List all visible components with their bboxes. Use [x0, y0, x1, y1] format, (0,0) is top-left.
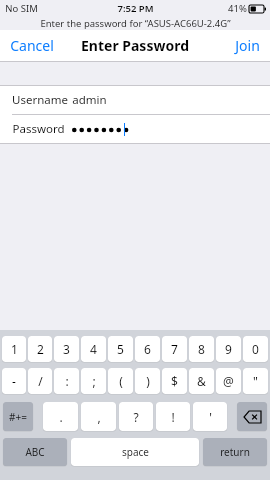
staticText: ' [209, 409, 212, 425]
staticText: #+= [9, 410, 27, 424]
button[interactable]: ABC [3, 438, 67, 466]
staticText: ) [146, 373, 150, 389]
staticText: Password [12, 121, 65, 137]
button[interactable]: return [203, 438, 267, 466]
staticText: ? [133, 409, 139, 425]
staticText: ! [171, 409, 175, 425]
button[interactable]: ? [119, 402, 153, 431]
staticText: - [12, 373, 16, 389]
staticText: ( [119, 373, 123, 389]
staticText: space [122, 445, 149, 459]
button[interactable]: 5 [108, 336, 133, 362]
staticText: Join [235, 36, 260, 55]
button[interactable]: Cancel [0, 31, 64, 60]
button[interactable]: 0 [243, 336, 268, 362]
button[interactable]: Delete [237, 402, 267, 431]
staticText: admin [72, 92, 107, 108]
staticText: 7 [171, 341, 178, 357]
staticText: 3 [63, 341, 70, 357]
button[interactable]: ! [156, 402, 190, 431]
button[interactable]: 8 [189, 336, 214, 362]
button[interactable]: . [43, 402, 78, 431]
staticText: 6 [144, 341, 151, 357]
staticText: 5 [117, 341, 124, 357]
button[interactable]: , [81, 402, 116, 431]
staticText: 1 [11, 341, 18, 357]
button[interactable]: ( [108, 368, 133, 394]
button[interactable]: 2 [28, 336, 52, 362]
button[interactable]: 4 [81, 336, 106, 362]
staticText: , [97, 409, 101, 425]
button[interactable]: ; [81, 368, 106, 394]
staticText: 0 [252, 341, 259, 357]
button[interactable]: Join [225, 31, 270, 60]
staticText: . [59, 409, 63, 425]
staticText: 2 [37, 341, 44, 357]
button[interactable]: ) [135, 368, 160, 394]
staticText: & [197, 373, 206, 389]
button[interactable]: #+= [3, 402, 33, 431]
button[interactable]: 6 [135, 336, 160, 362]
staticText: ABC [25, 445, 45, 459]
staticText: / [38, 373, 43, 389]
button[interactable]: " [243, 368, 268, 394]
button[interactable]: $ [162, 368, 187, 394]
button[interactable]: 1 [2, 336, 26, 362]
button[interactable]: 7 [162, 336, 187, 362]
button[interactable]: - [2, 368, 26, 394]
button[interactable]: & [189, 368, 214, 394]
button[interactable]: 9 [216, 336, 241, 362]
staticText: Enter the password for “ASUS-AC66U-2.4G” [40, 17, 231, 30]
staticText: 41% [228, 2, 247, 15]
staticText: $ [171, 373, 178, 389]
button[interactable]: Username [0, 86, 270, 114]
button[interactable]: Password [0, 115, 270, 143]
button[interactable]: @ [216, 368, 241, 394]
staticText: return [220, 445, 250, 459]
button[interactable]: space [71, 438, 199, 466]
button[interactable]: : [54, 368, 79, 394]
staticText: No SIM [5, 2, 38, 15]
staticText: Cancel [10, 36, 54, 55]
staticText: " [253, 373, 258, 389]
staticText: 9 [225, 341, 232, 357]
button[interactable]: / [28, 368, 52, 394]
staticText: : [65, 373, 69, 389]
button[interactable]: ' [193, 402, 227, 431]
staticText: 7:52 PM [117, 2, 154, 15]
button[interactable]: 3 [54, 336, 79, 362]
staticText: Enter Password [81, 36, 189, 55]
staticText: Username [12, 92, 68, 108]
staticText: 4 [90, 341, 97, 357]
staticText: ; [92, 373, 96, 389]
staticText: @ [223, 373, 234, 389]
staticText: 8 [198, 341, 205, 357]
